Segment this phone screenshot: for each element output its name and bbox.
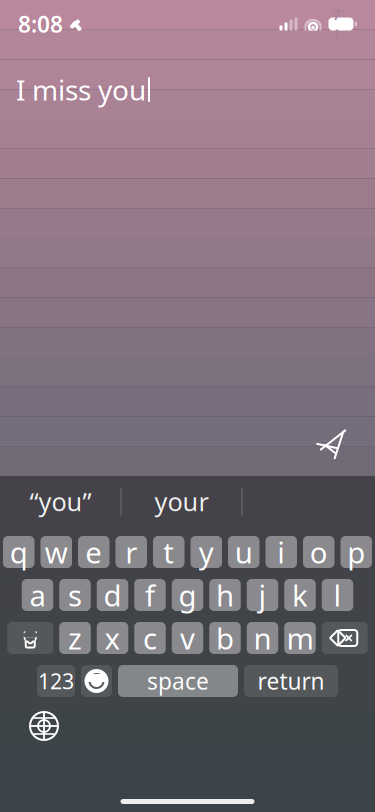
staticText: your [154,485,208,518]
staticText: s [68,575,82,614]
staticText: j [258,575,266,614]
staticText: p [347,532,365,571]
button[interactable]: b [209,622,241,654]
button[interactable]: t [153,536,184,568]
button[interactable]: j [247,579,278,611]
button[interactable]: p [340,536,372,568]
button[interactable]: w [40,536,72,568]
staticText: q [10,532,28,571]
button[interactable]: your [121,479,241,523]
staticText: I miss you [16,71,146,108]
staticText: o [310,532,328,571]
staticText: n [253,618,271,657]
staticText: z [68,618,82,657]
button[interactable]: r [115,536,147,568]
button[interactable]: x [97,622,128,654]
button[interactable]: space [118,665,238,697]
staticText: 71 [332,4,340,43]
button[interactable]: z [59,622,91,654]
button[interactable]: s [59,579,91,611]
button[interactable]: y [190,536,222,568]
staticText: i [277,532,285,571]
staticText: return [257,666,324,696]
button[interactable]: g [172,579,203,611]
button[interactable]: Emoji [81,665,112,697]
staticText: x [104,618,120,657]
staticText: r [125,532,137,571]
staticText: 123 [38,667,74,695]
staticText: “you” [29,485,91,518]
staticText: k [292,575,308,614]
button[interactable]: d [97,579,128,611]
staticText: a [29,575,45,614]
staticText: space [147,666,209,696]
staticText: b [216,618,234,657]
button[interactable]: u [228,536,259,568]
staticText: l [333,575,341,614]
staticText: w [45,532,68,571]
staticText: y [199,532,214,571]
button[interactable]: v [172,622,203,654]
staticText: g [178,575,196,614]
button[interactable]: l [322,579,353,611]
button[interactable]: f [134,579,166,611]
staticText: c [143,618,157,657]
button[interactable]: Shift [7,622,53,654]
button[interactable]: c [134,622,166,654]
staticText: m [286,618,313,657]
button[interactable]: return [244,665,338,697]
staticText: d [103,575,121,614]
staticText: 8:08 [18,9,63,39]
button[interactable]: e [78,536,109,568]
staticText: e [85,532,102,571]
button[interactable]: h [209,579,241,611]
button[interactable]: i [265,536,297,568]
button[interactable]: a [22,579,53,611]
button[interactable]: 123 [37,665,75,697]
button[interactable]: Next keyboard [21,703,67,749]
button[interactable]: Send [305,416,359,470]
staticText: u [235,532,253,571]
button[interactable]: q [3,536,34,568]
staticText: t [163,532,174,571]
button[interactable]: o [303,536,334,568]
button[interactable]: n [247,622,278,654]
staticText: h [216,575,234,614]
staticText: v [180,618,195,657]
staticText: f [145,575,155,614]
button[interactable]: k [284,579,316,611]
button[interactable]: m [284,622,316,654]
button[interactable]: Delete [322,622,368,654]
button[interactable]: “you” [0,479,120,523]
